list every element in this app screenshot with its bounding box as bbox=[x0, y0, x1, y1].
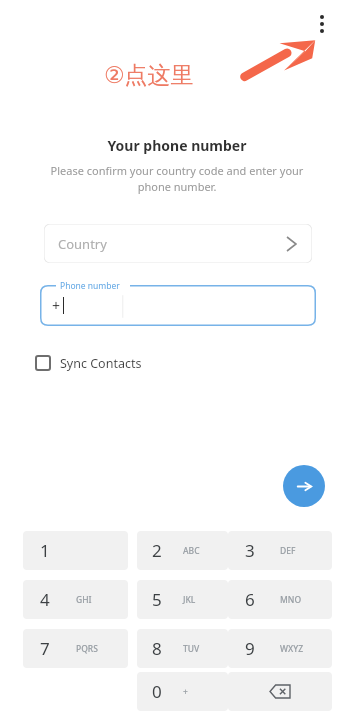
staticText: Sync Contacts bbox=[60, 355, 142, 372]
staticText: DEF bbox=[280, 545, 296, 557]
staticText: PQRS bbox=[76, 643, 98, 655]
staticText: Your phone number bbox=[0, 136, 354, 155]
staticText: JKL bbox=[183, 594, 196, 606]
staticText: GHI bbox=[76, 594, 92, 606]
staticText: + bbox=[183, 686, 188, 698]
staticText: 1 bbox=[40, 539, 50, 562]
staticText: 3 bbox=[245, 539, 255, 562]
staticText: 2 bbox=[152, 539, 162, 562]
button[interactable]: More options bbox=[306, 8, 338, 40]
staticText: WXYZ bbox=[280, 643, 304, 655]
staticText: ABC bbox=[183, 545, 200, 557]
button[interactable]: 1 bbox=[23, 531, 128, 570]
staticText: 7 bbox=[40, 637, 50, 660]
staticText: + bbox=[52, 296, 61, 315]
staticText: 8 bbox=[152, 637, 162, 660]
button[interactable]: 0 bbox=[137, 672, 228, 711]
staticText: 5 bbox=[152, 588, 162, 611]
staticText: Country bbox=[58, 235, 107, 253]
button[interactable]: 8 bbox=[137, 629, 228, 668]
button[interactable]: 4 bbox=[23, 580, 128, 619]
button[interactable]: 3 bbox=[228, 531, 332, 570]
button[interactable]: Country bbox=[44, 224, 312, 263]
staticText: ②点这里 bbox=[104, 61, 194, 90]
staticText: 4 bbox=[40, 588, 50, 611]
staticText: 6 bbox=[245, 588, 255, 611]
button[interactable]: Next bbox=[283, 465, 325, 507]
button[interactable]: 7 bbox=[23, 629, 128, 668]
staticText: 9 bbox=[245, 637, 255, 660]
button[interactable]: Backspace bbox=[228, 672, 332, 711]
button[interactable]: 9 bbox=[228, 629, 332, 668]
button[interactable]: 6 bbox=[228, 580, 332, 619]
staticText: Phone number bbox=[60, 280, 120, 292]
button[interactable]: Sync Contacts bbox=[36, 350, 142, 376]
staticText: TUV bbox=[183, 643, 200, 655]
button[interactable]: Phone number bbox=[40, 285, 316, 326]
button[interactable]: 5 bbox=[137, 580, 228, 619]
staticText: 0 bbox=[152, 680, 162, 703]
staticText: Please confirm your country code and ent… bbox=[38, 163, 316, 195]
button[interactable]: 2 bbox=[137, 531, 228, 570]
staticText: MNO bbox=[280, 594, 302, 606]
